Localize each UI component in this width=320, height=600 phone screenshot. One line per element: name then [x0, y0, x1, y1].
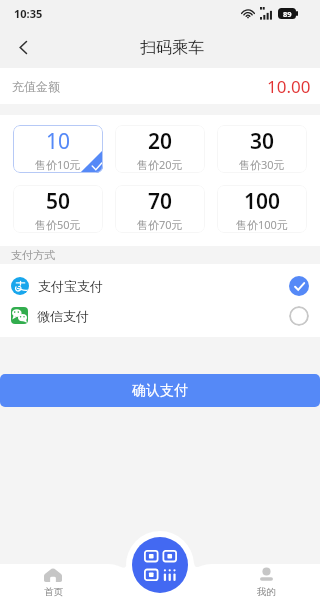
button[interactable]: 50 — [13, 185, 103, 233]
staticText: 微信支付 — [37, 308, 89, 324]
button[interactable]: 70 — [115, 185, 205, 233]
staticText: 10 — [46, 127, 71, 156]
staticText: 10:35 — [14, 6, 43, 21]
staticText: 10.00 — [267, 75, 311, 98]
staticText: 充值金额 — [12, 79, 60, 94]
button[interactable]: 首页 — [0, 563, 106, 600]
button[interactable]: 30 — [217, 125, 307, 173]
staticText: 89 — [283, 9, 292, 19]
staticText: 售价30元 — [239, 157, 285, 172]
staticText: 扫码乘车 — [140, 38, 204, 58]
staticText: 我的 — [257, 586, 276, 598]
button[interactable]: 确认支付 — [0, 374, 320, 407]
staticText: 支付方式 — [11, 248, 55, 262]
staticText: 确认支付 — [132, 382, 188, 400]
staticText: 30 — [250, 127, 275, 156]
button[interactable]: 微信支付 — [0, 305, 320, 326]
staticText: 100 — [244, 187, 281, 216]
staticText: 20 — [148, 127, 173, 156]
button[interactable]: 支付宝支付 — [0, 275, 320, 296]
staticText: 售价50元 — [35, 217, 81, 232]
staticText: 售价20元 — [137, 157, 183, 172]
button[interactable]: 20 — [115, 125, 205, 173]
button[interactable]: 我的 — [213, 563, 320, 600]
staticText: 售价100元 — [236, 217, 288, 232]
button[interactable]: 100 — [217, 185, 307, 233]
staticText: 首页 — [44, 586, 63, 598]
staticText: 售价70元 — [137, 217, 183, 232]
staticText: 50 — [46, 187, 71, 216]
button[interactable]: Scan QR code — [132, 537, 188, 593]
staticText: 支付宝支付 — [38, 278, 103, 294]
button[interactable]: Back — [6, 30, 40, 64]
button[interactable]: 10 — [13, 125, 103, 173]
staticText: 70 — [148, 187, 173, 216]
staticText: 售价10元 — [35, 157, 81, 172]
